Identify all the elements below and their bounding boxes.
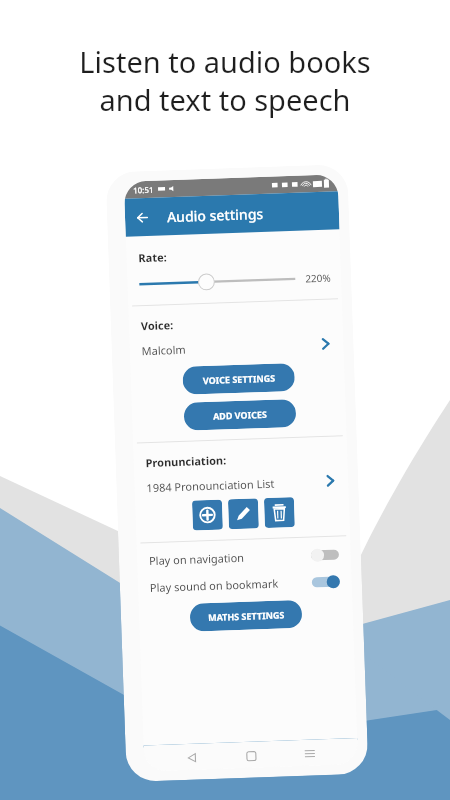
button[interactable]: VOICE SETTINGS bbox=[182, 363, 295, 395]
button[interactable]: Play sound on bookmark bbox=[150, 573, 340, 595]
button[interactable] bbox=[139, 270, 295, 293]
staticText: 10:51 bbox=[133, 184, 154, 195]
staticText: Play sound on bookmark bbox=[150, 576, 279, 595]
button[interactable]: Add bbox=[192, 499, 223, 530]
staticText: Voice: bbox=[140, 317, 174, 333]
staticText: Play on navigation bbox=[149, 550, 245, 568]
button[interactable]: Home bbox=[239, 744, 262, 767]
staticText: Audio settings bbox=[167, 204, 264, 226]
staticText: Listen to audio books and text to speech bbox=[79, 42, 371, 119]
staticText: ADD VOICES bbox=[213, 408, 267, 422]
button[interactable]: Back bbox=[124, 200, 160, 235]
button[interactable]: Back bbox=[180, 746, 203, 769]
staticText: Rate: bbox=[138, 249, 168, 265]
button[interactable]: Delete bbox=[264, 497, 295, 528]
button[interactable]: ADD VOICES bbox=[183, 399, 296, 431]
staticText: 220% bbox=[305, 271, 331, 285]
button[interactable]: Recents bbox=[298, 742, 321, 765]
button[interactable]: Play on navigation bbox=[149, 546, 339, 568]
button[interactable]: Edit bbox=[228, 498, 259, 529]
other: Open bbox=[322, 472, 339, 489]
staticText: Pronunciation: bbox=[145, 452, 227, 470]
other: Open bbox=[317, 336, 334, 352]
staticText: MATHS SETTINGS bbox=[208, 608, 285, 623]
staticText: VOICE SETTINGS bbox=[202, 372, 276, 386]
staticText: 1984 Pronounciation List bbox=[146, 476, 275, 495]
button[interactable]: MATHS SETTINGS bbox=[189, 600, 302, 632]
button[interactable]: 1984 Pronounciation List bbox=[146, 472, 339, 495]
button[interactable]: Malcolm bbox=[141, 336, 334, 358]
staticText: Malcolm bbox=[141, 342, 187, 358]
